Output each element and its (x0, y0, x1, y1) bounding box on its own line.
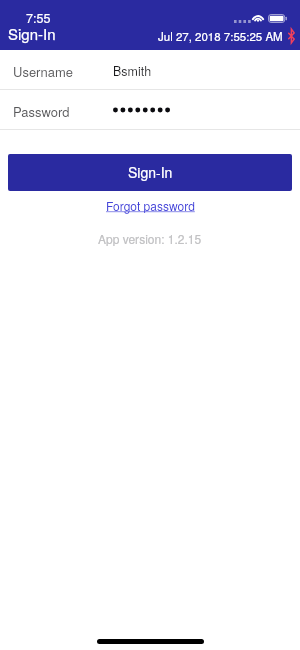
button[interactable]: Password (0, 90, 300, 129)
other: Wi-Fi connected (252, 13, 264, 22)
staticText: Sign-In (8, 23, 56, 44)
button[interactable]: Username (0, 50, 300, 89)
staticText: Sign-In (128, 162, 173, 182)
staticText: Password (13, 102, 70, 121)
staticText: App version: 1.2.15 (98, 230, 202, 247)
staticText: Jul 27, 2018 7:55:25 AM (158, 28, 283, 44)
staticText: Username (13, 62, 73, 81)
other: Battery full (268, 14, 287, 23)
other: Bluetooth on (288, 29, 295, 43)
staticText: Bsmith (113, 62, 152, 80)
button[interactable]: Forgot password (100, 194, 201, 217)
button[interactable]: Sign-In (8, 154, 292, 191)
other: Cellular signal strength (234, 20, 248, 24)
staticText: Forgot password (106, 197, 195, 214)
staticText: 7:55 (26, 9, 51, 27)
